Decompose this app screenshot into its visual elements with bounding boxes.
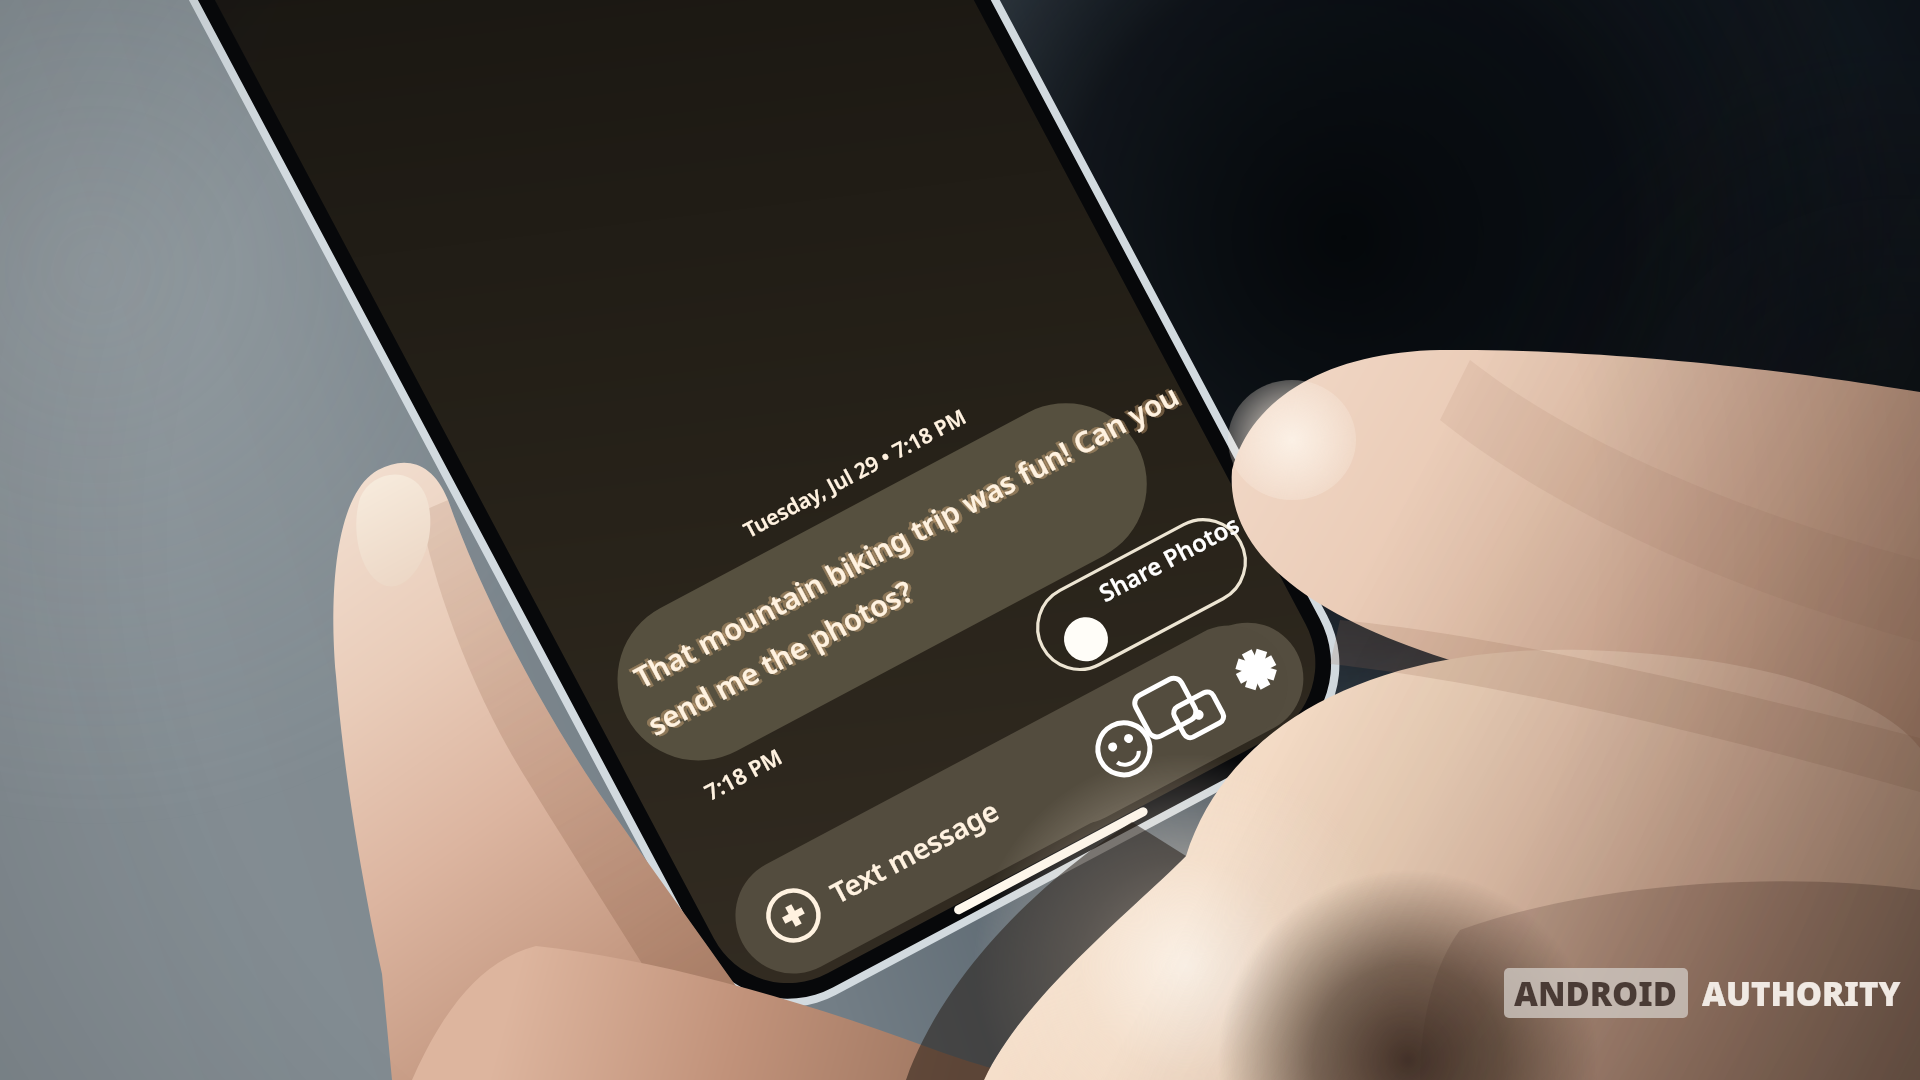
- button[interactable]: Text message: [742, 798, 1172, 958]
- button[interactable]: Message from contact: [628, 432, 1168, 732]
- button[interactable]: Insert emoji: [1070, 684, 1150, 764]
- button[interactable]: Add attachment: [742, 852, 838, 948]
- button[interactable]: Share Photos: [1022, 548, 1250, 682]
- button[interactable]: AI suggestions: [1204, 608, 1288, 690]
- button[interactable]: Attach photo: [1124, 648, 1208, 730]
